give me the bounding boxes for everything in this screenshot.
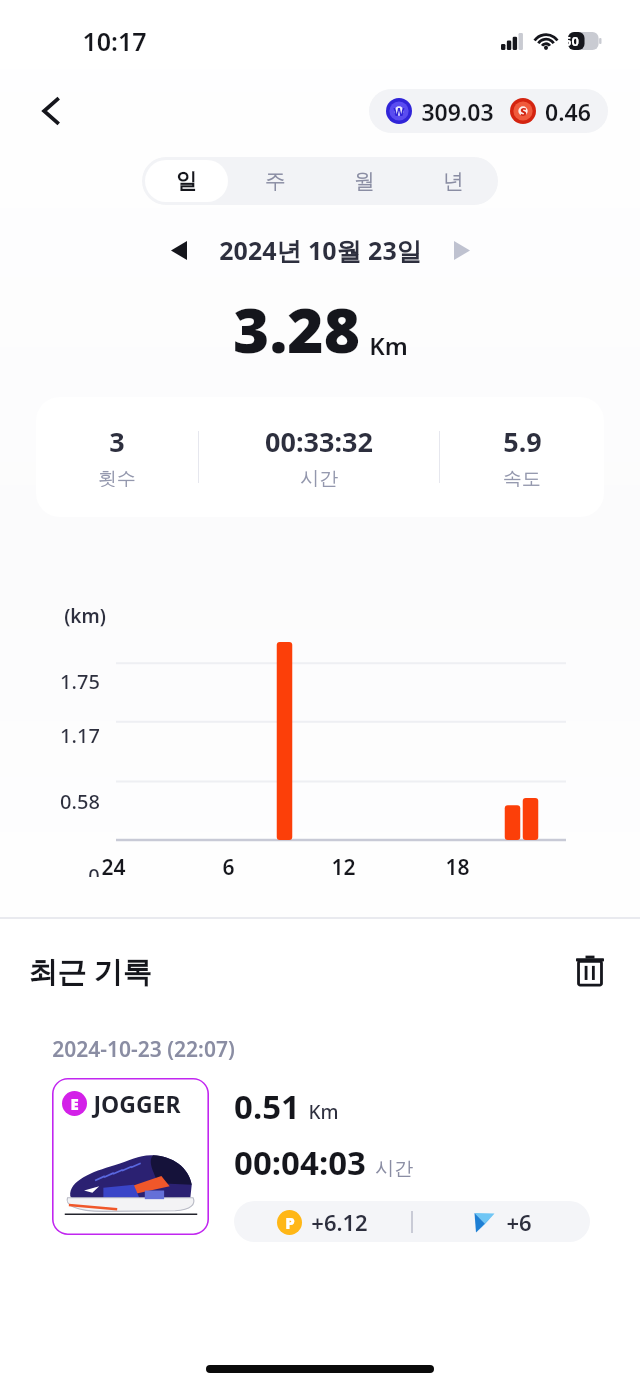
button[interactable]: 일 [145, 160, 228, 202]
staticText: Km [369, 329, 408, 362]
staticText: Km [308, 1099, 339, 1125]
staticText: 0.51 [234, 1084, 300, 1129]
staticText: 10:17 [82, 24, 147, 58]
staticText: 속도 [503, 467, 541, 491]
button[interactable]: W [369, 89, 608, 133]
button[interactable]: 주 [234, 160, 317, 202]
button[interactable]: Previous day [157, 230, 201, 270]
staticText: 24 [101, 853, 126, 877]
button[interactable]: 3 [36, 397, 604, 517]
staticText: 주 [265, 168, 286, 194]
staticText: 309.03 [421, 96, 494, 127]
staticText: 년 [443, 168, 464, 194]
staticText: 1.17 [60, 722, 100, 749]
staticText: 5.9 [503, 423, 542, 460]
staticText: 월 [354, 168, 375, 194]
staticText: 0 [88, 862, 100, 877]
button[interactable]: 월 [323, 160, 406, 202]
staticText: S [520, 104, 527, 119]
staticText: JOGGER [93, 1088, 181, 1119]
staticText: 0.58 [60, 788, 100, 815]
staticText: (km) [64, 603, 106, 629]
button[interactable]: 년 [412, 160, 495, 202]
staticText: 최근 기록 [28, 951, 152, 991]
staticText: 2024-10-23 (22:07) [52, 1035, 235, 1064]
staticText: 00:04:03 [234, 1140, 366, 1185]
button[interactable]: Delete records [564, 945, 616, 997]
staticText: 6 [222, 853, 235, 877]
staticText: 3 [109, 423, 125, 460]
staticText: P [285, 1213, 295, 1233]
button[interactable]: Next day [440, 230, 484, 270]
button[interactable]: E [52, 1078, 209, 1235]
button[interactable]: P [234, 1201, 590, 1242]
staticText: 1.75 [60, 668, 100, 695]
staticText: 시간 [375, 1157, 413, 1181]
staticText: 2024년 10월 23일 [219, 233, 422, 267]
staticText: +6 [506, 1207, 532, 1237]
staticText: 횟수 [98, 467, 136, 491]
staticText: 일 [176, 168, 197, 194]
staticText: 12 [331, 853, 356, 877]
staticText: 50 [564, 32, 579, 50]
staticText: 0.46 [545, 96, 591, 127]
button[interactable]: Back [26, 85, 78, 137]
staticText: E [70, 1094, 79, 1114]
staticText: +6.12 [311, 1207, 368, 1237]
staticText: 18 [445, 853, 470, 877]
staticText: 3.28 [233, 287, 360, 371]
button[interactable]: 2024-10-23 (22:07) [36, 1023, 604, 1252]
staticText: 00:33:32 [265, 423, 373, 460]
staticText: 시간 [300, 467, 338, 491]
staticText: W [393, 104, 405, 119]
